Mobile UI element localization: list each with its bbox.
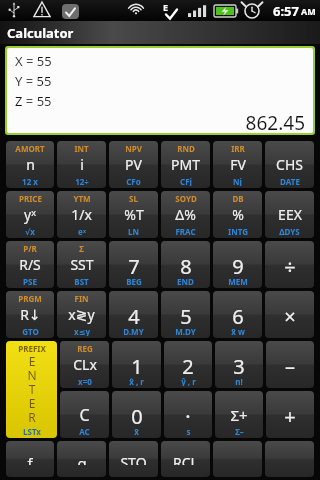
- staticText: Σ+: [230, 405, 248, 425]
- staticText: x≷y: [68, 305, 95, 324]
- button[interactable]: Blank key 1: [213, 441, 262, 477]
- staticText: g: [77, 453, 87, 465]
- staticText: %T: [124, 205, 144, 224]
- staticText: RCL: [173, 453, 198, 465]
- staticText: 8: [180, 253, 192, 276]
- button[interactable]: 8: [161, 241, 210, 288]
- button[interactable]: SOYD: [161, 191, 210, 238]
- button[interactable]: 0: [112, 391, 161, 438]
- staticText: 3: [233, 353, 245, 376]
- button[interactable]: Multiply: [265, 291, 314, 338]
- button[interactable]: 3: [215, 341, 263, 388]
- staticText: R/S: [19, 255, 41, 274]
- button[interactable]: EEX: [265, 191, 314, 238]
- staticText: E N T E R: [27, 353, 37, 426]
- staticText: M.DY: [175, 326, 196, 336]
- staticText: ×: [284, 303, 296, 326]
- button[interactable]: Subtract: [266, 341, 314, 388]
- button[interactable]: PRGM: [6, 291, 54, 338]
- button[interactable]: NPV: [109, 141, 158, 188]
- staticText: REG: [77, 343, 93, 353]
- staticText: LSTx: [23, 426, 41, 436]
- button[interactable]: C: [60, 391, 109, 438]
- staticText: +: [284, 403, 296, 426]
- staticText: 4: [128, 303, 140, 326]
- staticText: INT: [74, 143, 89, 153]
- staticText: i: [80, 155, 84, 174]
- button[interactable]: PREFIX: [6, 341, 57, 438]
- staticText: X = 55: [15, 52, 52, 70]
- staticText: FIN: [74, 293, 89, 303]
- staticText: 12÷: [75, 176, 89, 186]
- staticText: PSE: [23, 276, 37, 286]
- staticText: 9: [232, 253, 244, 276]
- staticText: –: [285, 353, 295, 376]
- staticText: 2: [182, 353, 194, 376]
- staticText: 7: [128, 253, 140, 276]
- staticText: C: [79, 404, 90, 426]
- button[interactable]: IRR: [213, 141, 262, 188]
- button[interactable]: Σ+: [215, 391, 263, 438]
- staticText: Σ–: [235, 426, 244, 436]
- staticText: CFj: [180, 176, 192, 186]
- button[interactable]: Add: [266, 391, 314, 438]
- staticText: 1: [131, 353, 143, 376]
- button[interactable]: P/R: [6, 241, 54, 288]
- staticText: YTM: [73, 193, 91, 203]
- button[interactable]: Σ: [57, 241, 106, 288]
- button[interactable]: 6: [213, 291, 262, 338]
- staticText: CLx: [73, 355, 97, 374]
- staticText: AMORT: [15, 143, 45, 153]
- staticText: Y = 55: [15, 72, 52, 90]
- staticText: x̄ w: [231, 326, 245, 336]
- button[interactable]: PRICE: [6, 191, 54, 238]
- button[interactable]: FIN: [57, 291, 106, 338]
- button[interactable]: 4: [109, 291, 158, 338]
- staticText: D.MY: [123, 326, 144, 336]
- staticText: 1/x: [71, 205, 92, 224]
- staticText: DB: [232, 193, 244, 203]
- staticText: 6:57: [273, 2, 299, 20]
- button[interactable]: AMORT: [6, 141, 54, 188]
- staticText: x≤y: [74, 326, 90, 336]
- button[interactable]: SL: [109, 191, 158, 238]
- staticText: GTO: [22, 326, 39, 336]
- button[interactable]: 5: [161, 291, 210, 338]
- button[interactable]: 1: [112, 341, 161, 388]
- button[interactable]: RND: [161, 141, 210, 188]
- button[interactable]: STO: [109, 441, 158, 477]
- button[interactable]: g shift: [57, 441, 106, 477]
- button[interactable]: CHS: [265, 141, 314, 188]
- staticText: ŷ , r: [181, 376, 196, 386]
- staticText: √x: [25, 226, 35, 236]
- staticText: x̂ , r: [129, 376, 144, 386]
- staticText: 12 x: [22, 176, 38, 186]
- staticText: R↓: [20, 305, 41, 324]
- staticText: RND: [177, 143, 195, 153]
- staticText: FRAC: [175, 226, 196, 236]
- staticText: n!: [235, 376, 243, 386]
- button[interactable]: 7: [109, 241, 158, 288]
- staticText: yˣ: [24, 205, 36, 224]
- button[interactable]: REG: [60, 341, 109, 388]
- button[interactable]: Blank key 2: [265, 441, 314, 477]
- staticText: Σ: [79, 243, 84, 253]
- button[interactable]: RCL: [161, 441, 210, 477]
- staticText: ΔDYS: [279, 226, 300, 236]
- staticText: f: [27, 453, 33, 465]
- staticText: x̄: [134, 426, 139, 436]
- button[interactable]: 9: [213, 241, 262, 288]
- staticText: E: [163, 1, 169, 13]
- staticText: Z = 55: [15, 92, 52, 110]
- button[interactable]: f shift: [6, 441, 54, 477]
- button[interactable]: 2: [164, 341, 212, 388]
- staticText: PV: [125, 155, 142, 174]
- staticText: LN: [128, 226, 139, 236]
- button[interactable]: ·: [164, 391, 212, 438]
- staticText: NPV: [125, 143, 142, 153]
- button[interactable]: Divide: [265, 241, 314, 288]
- button[interactable]: YTM: [57, 191, 106, 238]
- button[interactable]: INT: [57, 141, 106, 188]
- button[interactable]: DB: [213, 191, 262, 238]
- staticText: s: [186, 426, 191, 436]
